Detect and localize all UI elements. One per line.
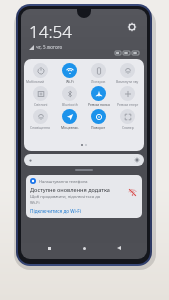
staticText: Bluetooth bbox=[62, 102, 78, 107]
button[interactable]: Режим енерг bbox=[113, 86, 142, 107]
staticText: Місцезнах. bbox=[61, 125, 79, 130]
button[interactable]: Bluetooth bbox=[55, 86, 84, 107]
button[interactable]: Мобільний інтернет bbox=[26, 63, 55, 84]
button[interactable]: Ліхтарик bbox=[84, 63, 113, 84]
button[interactable]: Режим польо bbox=[84, 86, 113, 107]
button[interactable]: Місцезнах. bbox=[55, 109, 84, 130]
staticText: Доступне оновлення додатка bbox=[30, 186, 110, 193]
staticText: Поворот bbox=[91, 125, 106, 130]
button[interactable]: Сповіщення bbox=[26, 109, 55, 130]
button[interactable]: Налаштування телефона bbox=[26, 175, 142, 218]
staticText: Режим енерг bbox=[117, 102, 139, 107]
staticText: Вимкнути зву bbox=[116, 79, 139, 84]
staticText: чт, 5 лютого bbox=[36, 44, 63, 50]
staticText: Світлині bbox=[34, 102, 48, 107]
staticText: Підключитися до Wi-Fi bbox=[30, 208, 81, 214]
button[interactable]: Brightness bbox=[24, 154, 144, 166]
staticText: Режим польо bbox=[88, 102, 110, 107]
button[interactable]: Settings bbox=[125, 20, 139, 34]
button[interactable]: Підключитися до Wi-Fi bbox=[30, 208, 81, 214]
button[interactable]: Recents bbox=[42, 241, 56, 255]
staticText: 14:54 bbox=[29, 20, 72, 43]
staticText: Щоб продовжити, підключіться до Wi-Fi bbox=[30, 194, 101, 206]
staticText: Налаштування телефона bbox=[39, 179, 88, 184]
button[interactable]: Wi-Fi bbox=[55, 63, 84, 84]
staticText: Сканер bbox=[122, 125, 134, 130]
staticText: Мобільний інтернет bbox=[26, 79, 55, 84]
staticText: Ліхтарик bbox=[91, 79, 106, 84]
button[interactable]: Вимкнути зву bbox=[113, 63, 142, 84]
button[interactable]: Світлині bbox=[26, 86, 55, 107]
button[interactable]: Back bbox=[112, 241, 126, 255]
button[interactable]: Home bbox=[77, 241, 91, 255]
button[interactable]: Поворот bbox=[84, 109, 113, 130]
staticText: Сповіщення bbox=[30, 125, 51, 130]
button[interactable]: Сканер bbox=[113, 109, 142, 130]
staticText: Wi-Fi bbox=[66, 79, 74, 84]
